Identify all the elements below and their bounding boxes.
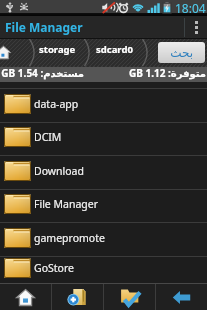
staticText: Download bbox=[34, 164, 84, 178]
button[interactable]: Download bbox=[0, 155, 207, 189]
staticText: بحث bbox=[170, 46, 193, 60]
button[interactable]: gamepromote bbox=[0, 222, 207, 256]
button[interactable]: Back bbox=[156, 284, 207, 310]
staticText: File Manager bbox=[5, 19, 83, 35]
staticText: متوفرة: GB 1.12 bbox=[128, 66, 206, 80]
staticText: GoStore bbox=[34, 261, 74, 275]
staticText: File Manager bbox=[34, 197, 99, 211]
staticText: data-app bbox=[34, 97, 79, 111]
staticText: storage bbox=[39, 43, 76, 56]
button[interactable]: DCIM bbox=[0, 122, 207, 155]
staticText: sdcard0 bbox=[96, 43, 133, 56]
staticText: DCIM bbox=[34, 130, 62, 144]
button[interactable]: data-app bbox=[0, 88, 207, 122]
button[interactable]: GoStore bbox=[0, 256, 207, 283]
staticText: 18:04 bbox=[175, 0, 206, 14]
button[interactable]: File Manager bbox=[0, 189, 207, 222]
button[interactable]: Home bbox=[0, 38, 22, 67]
button[interactable]: بحث bbox=[158, 42, 205, 63]
staticText: مستخدم: GB 1.54 bbox=[1, 66, 84, 80]
button[interactable]: New folder bbox=[52, 284, 103, 310]
button[interactable]: Select bbox=[104, 284, 155, 310]
staticText: gamepromote bbox=[34, 231, 105, 245]
button[interactable]: More options bbox=[185, 16, 207, 38]
button[interactable]: Home bbox=[0, 284, 51, 310]
